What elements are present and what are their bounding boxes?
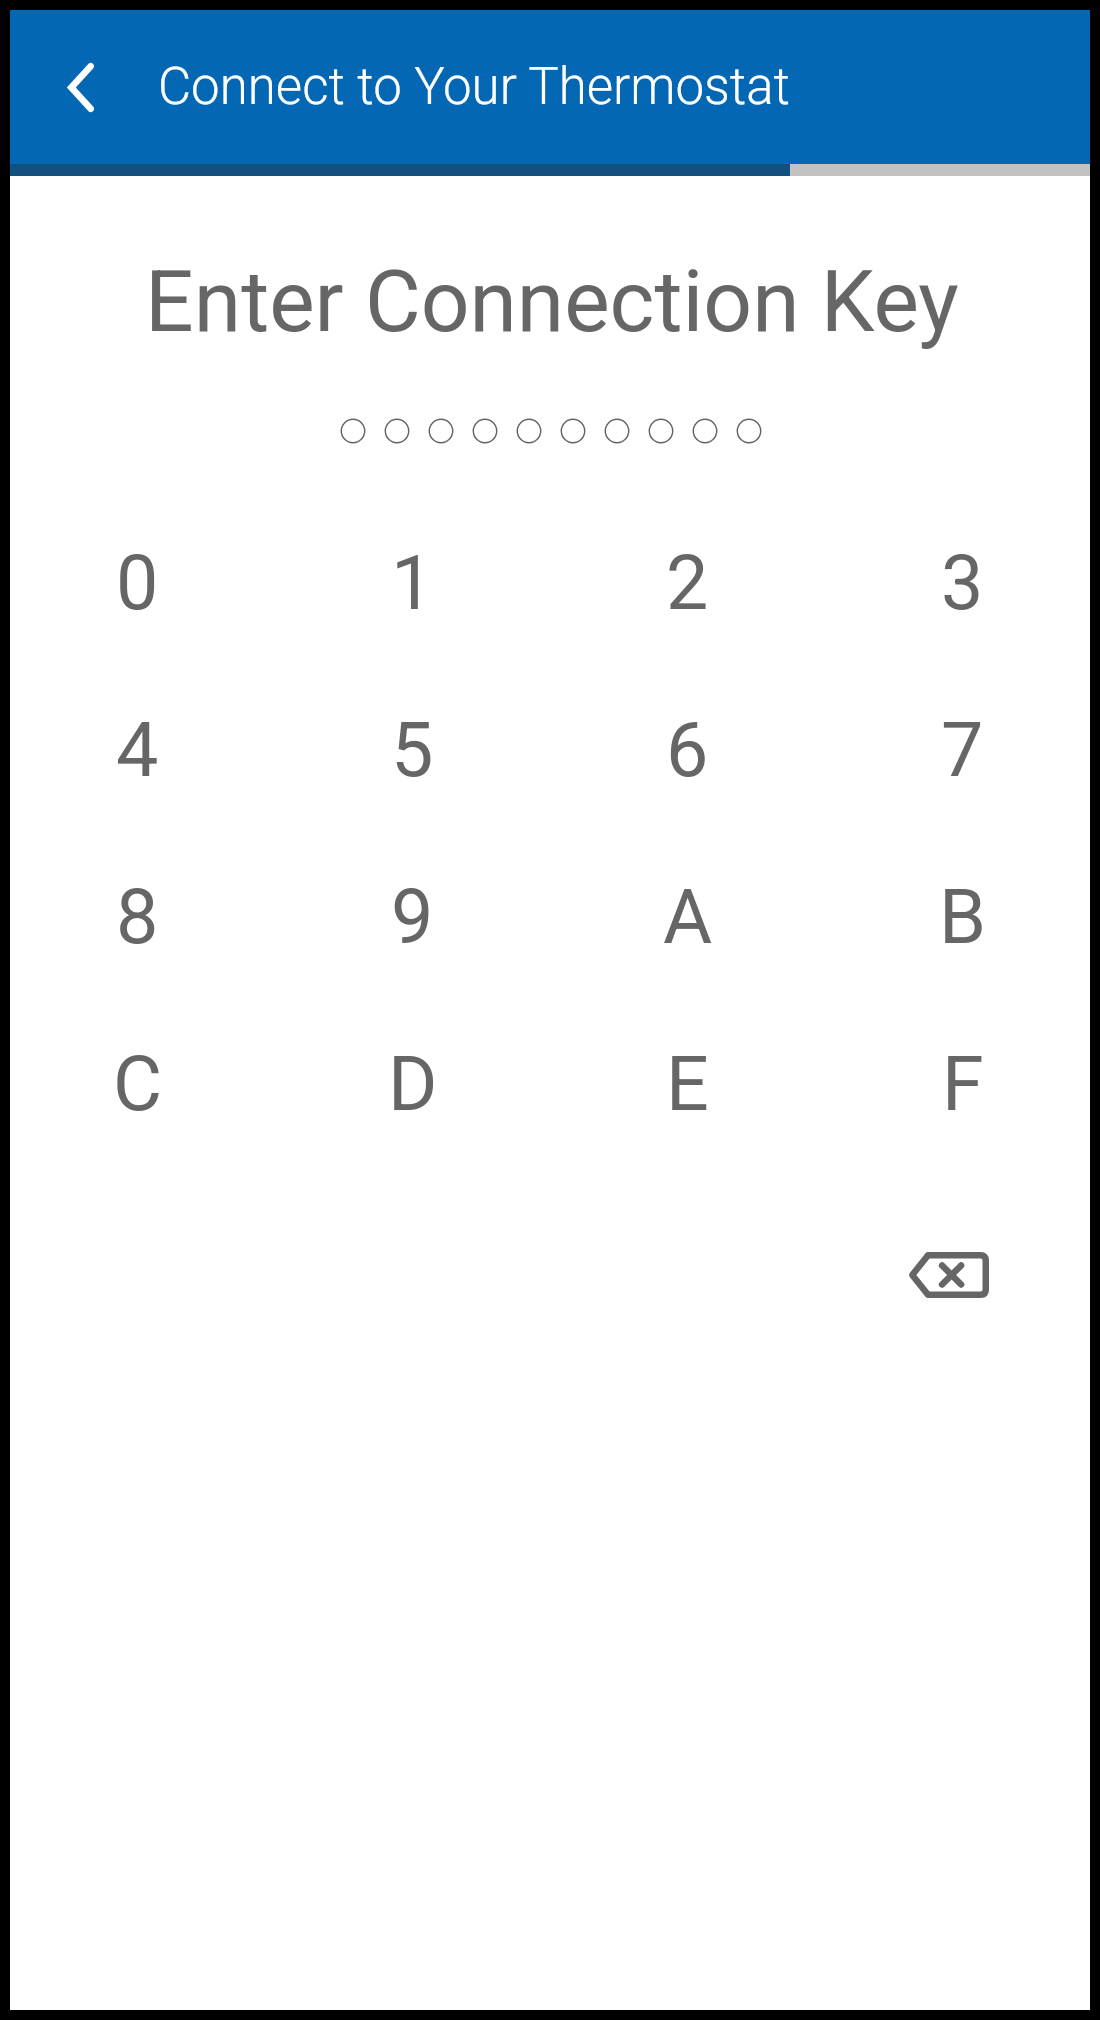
staticText: 7	[941, 706, 984, 794]
staticText: 9	[391, 873, 434, 961]
button[interactable]: Navigate up	[0, 10, 158, 164]
button[interactable]: 5	[275, 666, 550, 833]
button[interactable]: 2	[550, 499, 825, 666]
staticText: D	[388, 1040, 438, 1128]
staticText: 1	[391, 539, 434, 627]
button[interactable]: 0	[0, 499, 275, 666]
button[interactable]: C	[0, 1000, 275, 1167]
button[interactable]: E	[550, 1000, 825, 1167]
staticText: A	[663, 873, 713, 961]
staticText: 2	[666, 539, 709, 627]
staticText: E	[666, 1040, 709, 1128]
staticText: F	[942, 1040, 984, 1128]
staticText: 8	[116, 873, 159, 961]
button[interactable]: D	[275, 1000, 550, 1167]
button[interactable]: 4	[0, 666, 275, 833]
button[interactable]: B	[825, 833, 1100, 1000]
button[interactable]: 7	[825, 666, 1100, 833]
staticText: 3	[941, 539, 984, 627]
staticText: C	[113, 1040, 163, 1128]
button[interactable]: Backspace	[825, 1239, 1072, 1310]
staticText: 4	[116, 706, 159, 794]
button[interactable]: F	[825, 1000, 1100, 1167]
staticText: B	[939, 873, 986, 961]
staticText: 0	[116, 539, 159, 627]
button[interactable]: 6	[550, 666, 825, 833]
staticText: Enter Connection Key	[4, 251, 1100, 351]
button[interactable]: 3	[825, 499, 1100, 666]
button[interactable]: 1	[275, 499, 550, 666]
staticText: Connect to Your Thermostat	[158, 57, 790, 117]
staticText: 5	[391, 706, 434, 794]
staticText: 6	[666, 706, 709, 794]
button[interactable]: A	[550, 833, 825, 1000]
button[interactable]: 8	[0, 833, 275, 1000]
button[interactable]: 9	[275, 833, 550, 1000]
